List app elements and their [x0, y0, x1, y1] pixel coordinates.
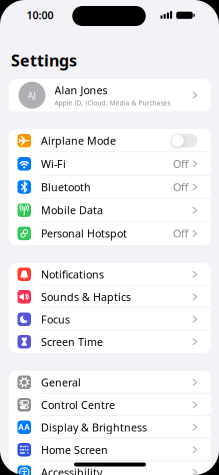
staticText: Wi-Fi [41, 157, 66, 171]
staticText: AA [18, 422, 30, 432]
button[interactable]: Control Centre [9, 393, 211, 416]
button[interactable]: Wi-Fi [9, 152, 211, 175]
staticText: Accessibility [41, 465, 102, 475]
button[interactable]: Airplane Mode [9, 129, 211, 152]
staticText: Alan Jones [54, 83, 107, 97]
button[interactable]: General [9, 371, 211, 393]
button[interactable]: Focus [9, 308, 211, 330]
button[interactable]: Sounds & Haptics [9, 285, 211, 308]
staticText: Bluetooth [41, 180, 91, 194]
staticText: Display & Brightness [41, 420, 147, 434]
staticText: Mobile Data [41, 203, 103, 217]
button[interactable]: Bluetooth [9, 175, 211, 199]
staticText: Off [173, 226, 188, 240]
button[interactable]: AJ [9, 79, 211, 111]
button[interactable]: Mobile Data [9, 199, 211, 222]
staticText: Off [173, 157, 188, 171]
staticText: Control Centre [41, 398, 115, 412]
button[interactable]: Personal Hotspot [9, 222, 211, 245]
button[interactable]: AA [9, 416, 211, 438]
staticText: Airplane Mode [41, 133, 116, 148]
staticText: AJ [27, 89, 36, 101]
staticText: Notifications [41, 267, 104, 281]
staticText: Sounds & Haptics [41, 290, 131, 304]
staticText: General [41, 375, 81, 389]
staticText: Apple ID, iCloud, Media & Purchases [54, 99, 170, 107]
button[interactable]: Home Screen [9, 438, 211, 461]
staticText: 10:00 [26, 8, 53, 22]
button[interactable]: Notifications [9, 263, 211, 285]
staticText: Personal Hotspot [41, 226, 127, 240]
staticText: Off [173, 180, 188, 194]
button[interactable]: Screen Time [9, 330, 211, 353]
staticText: Settings [11, 50, 77, 71]
staticText: Home Screen [41, 443, 108, 457]
staticText: Screen Time [41, 335, 103, 349]
button[interactable]: Accessibility [9, 461, 211, 475]
staticText: Focus [41, 312, 70, 326]
